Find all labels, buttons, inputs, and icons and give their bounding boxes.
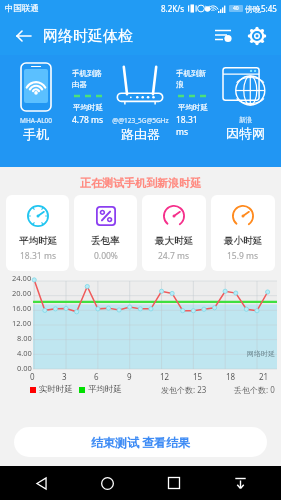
staticText: 15.9 ms — [227, 250, 259, 262]
staticText: 平均时延 — [178, 103, 208, 112]
staticText: 丢包率 — [91, 235, 120, 247]
staticText: 6 — [94, 371, 99, 382]
staticText: 实时时延 — [39, 384, 73, 395]
button[interactable]: 最小时延 — [211, 195, 275, 271]
staticText: 16.00 — [12, 303, 32, 313]
staticText: 平均时延 — [88, 384, 122, 395]
button[interactable]: 平均时延 — [6, 195, 69, 271]
staticText: 网络时延 — [247, 349, 275, 358]
button[interactable]: Settings — [243, 22, 271, 50]
staticText: 因特网 — [226, 125, 265, 141]
staticText: 傍晚5:45 — [245, 3, 277, 14]
staticText: 丢包个数: 0 — [234, 384, 275, 395]
staticText: 18.31 ms — [20, 250, 56, 262]
staticText: 12.00 — [12, 318, 32, 328]
staticText: 最大时延 — [155, 235, 193, 247]
button[interactable]: Back — [26, 468, 56, 498]
button[interactable]: 结束测试 查看结果 — [14, 427, 267, 457]
button[interactable]: Recents — [159, 468, 189, 498]
staticText: 4.00 — [17, 348, 32, 358]
staticText: 24.7 ms — [158, 250, 190, 262]
staticText: 18 — [226, 371, 236, 382]
staticText: 0 — [30, 371, 35, 382]
staticText: 3 — [62, 371, 67, 382]
staticText: 发包个数: 23 — [161, 384, 207, 395]
staticText: 手机到新浪 — [176, 69, 209, 89]
staticText: 平均时延 — [19, 235, 57, 247]
staticText: 8.2K/s — [161, 3, 185, 14]
staticText: 0.00 — [17, 363, 32, 373]
staticText: 手机 — [23, 126, 49, 142]
button[interactable]: Back — [10, 23, 36, 49]
button[interactable]: History — [209, 22, 237, 50]
staticText: 正在测试手机到新浪时延 — [0, 176, 281, 190]
button[interactable]: 丢包率 — [74, 195, 137, 271]
staticText: 24.00 — [12, 273, 32, 283]
staticText: 新浪 — [239, 116, 252, 124]
staticText: 结束测试 查看结果 — [91, 434, 191, 450]
staticText: 手机到路由器 — [72, 69, 104, 89]
staticText: 4.78 ms — [72, 114, 104, 126]
staticText: 网络时延体检 — [43, 27, 133, 46]
staticText: 18.31 ms — [176, 114, 209, 138]
staticText: 0.00% — [94, 250, 118, 262]
staticText: @@123_5G@5GHz — [112, 116, 169, 125]
button[interactable]: 最大时延 — [142, 195, 206, 271]
staticText: MHA-AL00 — [20, 116, 52, 125]
staticText: 最小时延 — [224, 235, 262, 247]
staticText: 20.00 — [12, 288, 32, 298]
staticText: 40 — [233, 5, 239, 12]
staticText: 路由器 — [121, 126, 160, 142]
staticText: 平均时延 — [73, 103, 103, 112]
staticText: 8.00 — [17, 333, 32, 343]
staticText: 中国联通 — [5, 3, 39, 14]
staticText: 21 — [259, 371, 269, 382]
button[interactable]: Home — [92, 468, 122, 498]
staticText: 15 — [193, 371, 203, 382]
staticText: 12 — [160, 371, 170, 382]
button[interactable]: Hide navigation bar — [225, 468, 255, 498]
staticText: 9 — [127, 371, 132, 382]
